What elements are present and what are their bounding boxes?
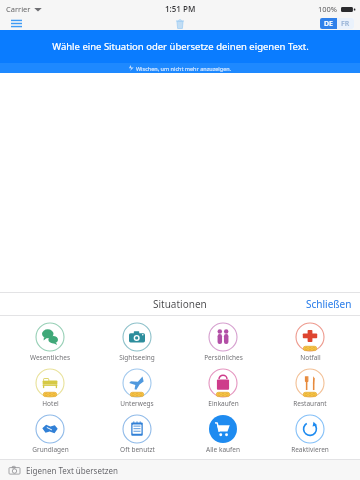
staticText: Restaurant bbox=[293, 399, 327, 408]
staticText: Wischen, um nicht mehr anzuzeigen. bbox=[136, 65, 232, 72]
button[interactable]: Alle kaufen bbox=[187, 411, 259, 457]
staticText: Sightseeing bbox=[119, 353, 155, 362]
staticText: Grundlagen bbox=[32, 445, 69, 454]
button[interactable]: Delete bbox=[172, 17, 188, 30]
staticText: DE bbox=[324, 19, 334, 29]
staticText: Unterwegs bbox=[120, 399, 154, 408]
button[interactable]: Notfall bbox=[274, 319, 346, 365]
button[interactable]: Persönliches bbox=[187, 319, 259, 365]
button[interactable]: Oft benutzt bbox=[101, 411, 173, 457]
button[interactable]: DE bbox=[320, 18, 337, 29]
button[interactable]: Sightseeing bbox=[101, 319, 173, 365]
staticText: Carrier bbox=[6, 4, 31, 14]
staticText: FR bbox=[341, 19, 350, 29]
button[interactable]: Wesentliches bbox=[14, 319, 86, 365]
button[interactable]: Einkaufen bbox=[187, 365, 259, 411]
staticText: Reaktivieren bbox=[291, 445, 329, 454]
button[interactable]: Reaktivieren bbox=[274, 411, 346, 457]
button[interactable]: Wischen, um nicht mehr anzuzeigen. bbox=[0, 63, 360, 73]
button[interactable]: Wähle eine Situation oder übersetze dein… bbox=[0, 30, 360, 63]
button[interactable]: Camera bbox=[6, 462, 22, 478]
staticText: Oft benutzt bbox=[120, 445, 155, 454]
staticText: Hotel bbox=[42, 399, 59, 408]
button[interactable]: FR bbox=[337, 18, 354, 29]
staticText: Situationen bbox=[153, 297, 207, 311]
staticText: Eigenen Text übersetzen bbox=[26, 465, 118, 476]
staticText: Schließen bbox=[306, 297, 352, 311]
staticText: Wähle eine Situation oder übersetze dein… bbox=[52, 40, 309, 53]
staticText: Einkaufen bbox=[208, 399, 239, 408]
button[interactable]: Unterwegs bbox=[101, 365, 173, 411]
staticText: 100% bbox=[318, 4, 338, 14]
staticText: Notfall bbox=[300, 353, 321, 362]
button[interactable]: Grundlagen bbox=[14, 411, 86, 457]
button[interactable]: Schließen bbox=[306, 297, 352, 311]
staticText: Persönliches bbox=[204, 353, 243, 362]
button[interactable]: Restaurant bbox=[274, 365, 346, 411]
button[interactable]: Eigenen Text übersetzen bbox=[26, 465, 360, 476]
staticText: 1:51 PM bbox=[165, 3, 196, 14]
staticText: Alle kaufen bbox=[206, 445, 240, 454]
button[interactable]: Menu bbox=[8, 17, 24, 30]
button[interactable]: Hotel bbox=[14, 365, 86, 411]
staticText: Wesentliches bbox=[30, 353, 70, 362]
